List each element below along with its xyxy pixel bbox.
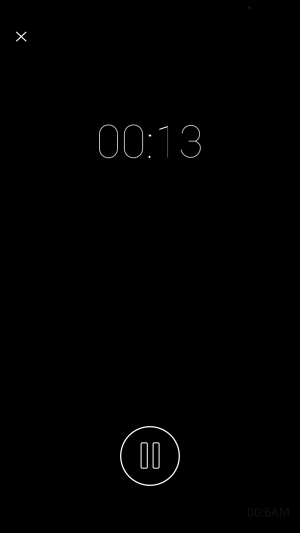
staticText: 00:6AM [247, 504, 290, 520]
button[interactable]: Close [0, 0, 300, 533]
button[interactable]: Pause [0, 0, 300, 533]
